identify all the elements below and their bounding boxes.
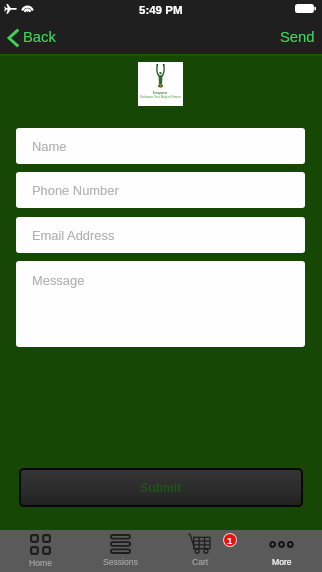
button[interactable]: Send [270,23,322,52]
button[interactable]: Home [0,530,80,572]
staticText: Message [32,273,85,287]
staticText: Phone Number [32,183,119,197]
staticText: Inspire [153,90,168,95]
staticText: Submit [140,481,182,495]
staticText: Name [32,139,67,153]
button[interactable]: Email Address [16,217,305,253]
staticText: More [272,557,292,567]
staticText: Cart [192,557,209,567]
button[interactable]: Back [0,23,64,52]
staticText: Galvanise Your Body to Fitness [140,95,181,98]
staticText: Back [23,29,56,46]
staticText: 1 [227,535,233,546]
button[interactable]: Message [16,261,305,347]
staticText: Sessions [103,557,138,567]
button[interactable]: Name [16,128,305,164]
staticText: Email Address [32,228,115,242]
button[interactable]: Sessions [80,530,160,572]
button[interactable]: Submit [19,468,303,507]
button[interactable]: Cart [160,530,241,572]
button[interactable]: More [241,530,322,572]
staticText: Home [29,558,52,568]
button[interactable]: Phone Number [16,172,305,208]
staticText: 5:49 PM [139,4,183,17]
staticText: Send [280,29,315,46]
